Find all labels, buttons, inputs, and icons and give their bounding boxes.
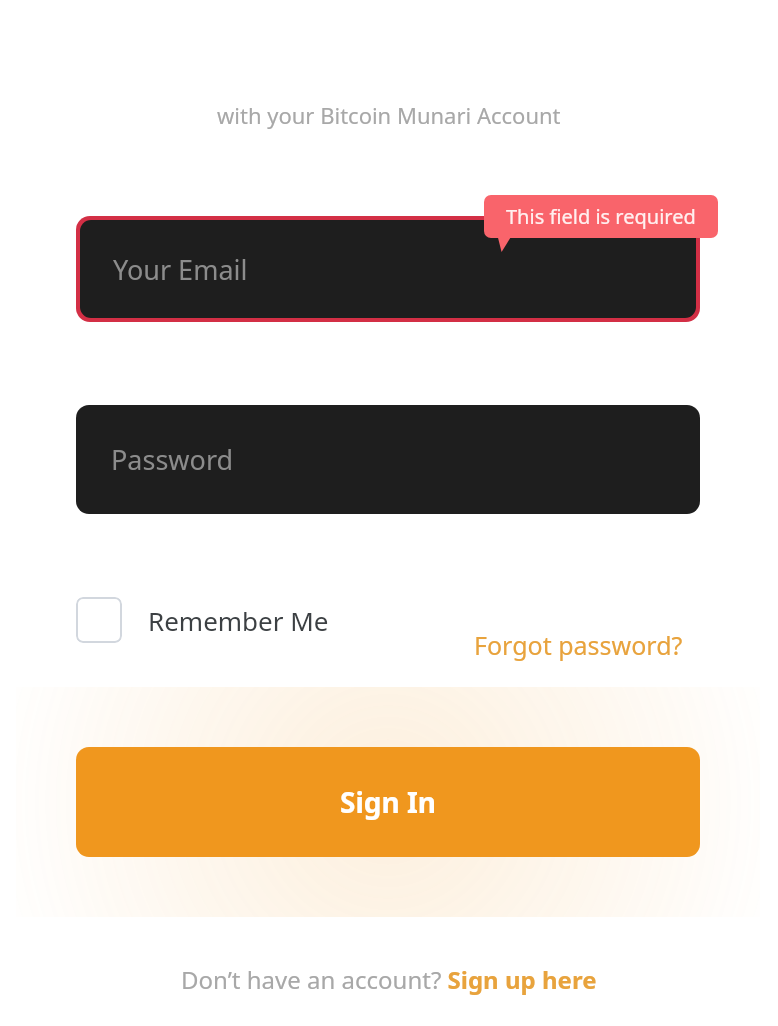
staticText: Don’t have an account? Sign up here	[181, 963, 597, 996]
staticText: Forgot password?	[474, 628, 683, 662]
button[interactable]: Forgot password?	[474, 628, 683, 662]
staticText: Sign In	[340, 783, 437, 821]
button[interactable]: Don’t have an account? Sign up here	[181, 963, 597, 996]
button[interactable]: Remember Me	[76, 597, 329, 643]
staticText: with your Bitcoin Munari Account	[217, 100, 561, 130]
staticText: Your Email	[113, 251, 248, 288]
button[interactable]: Password	[76, 405, 700, 514]
staticText: Remember Me	[148, 603, 329, 638]
button[interactable]: Sign In	[76, 747, 700, 857]
button[interactable]: Your Email	[76, 216, 700, 322]
staticText: Password	[111, 441, 234, 478]
staticText: This field is required	[506, 203, 696, 230]
